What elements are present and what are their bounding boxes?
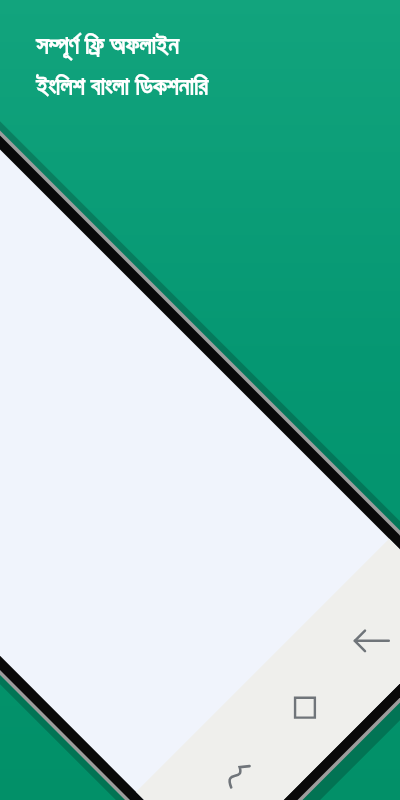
button[interactable]: Phone preview of the dictionary app bbox=[0, 0, 400, 800]
staticText: সম্পূর্ণ ফ্রি অফলাইন bbox=[36, 28, 179, 61]
staticText: ইংলিশ বাংলা ডিকশনারি bbox=[36, 69, 208, 102]
